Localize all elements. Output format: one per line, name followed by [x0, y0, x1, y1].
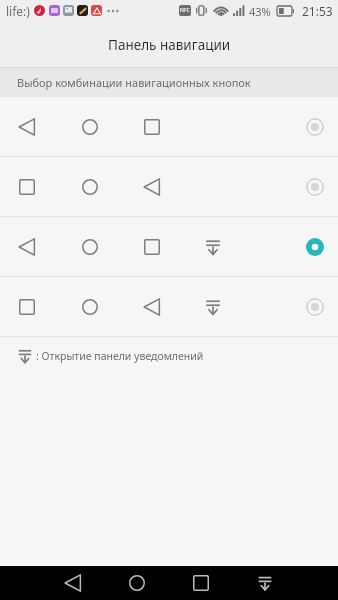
staticText: life:)	[6, 3, 30, 19]
staticText: : Открытие панели уведомлений	[36, 349, 204, 363]
button[interactable]: Notification panel	[248, 566, 282, 600]
button[interactable]: Back	[56, 566, 90, 600]
staticText: NFC	[180, 7, 190, 14]
staticText: 43%	[249, 4, 271, 19]
button[interactable]	[0, 157, 338, 217]
staticText: Панель навигации	[108, 36, 231, 54]
button[interactable]: Recents	[184, 566, 218, 600]
staticText: Выбор комбинации навигационных кнопок	[17, 75, 251, 90]
button[interactable]: Home	[120, 566, 154, 600]
button[interactable]	[0, 217, 338, 277]
staticText: 21:53	[302, 3, 333, 19]
button[interactable]	[0, 277, 338, 337]
button[interactable]	[0, 97, 338, 157]
